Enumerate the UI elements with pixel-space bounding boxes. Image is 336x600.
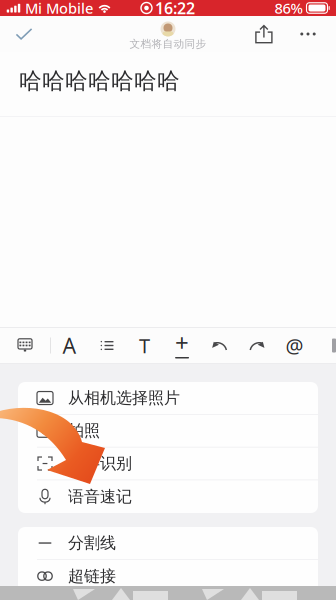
staticText: Mi Mobile bbox=[25, 0, 93, 18]
button[interactable]: 超链接 bbox=[18, 560, 318, 593]
button[interactable]: Redo bbox=[238, 327, 276, 364]
staticText: + bbox=[175, 327, 189, 358]
button[interactable]: Keyboard bbox=[0, 327, 50, 364]
staticText: 拍照 bbox=[68, 421, 100, 441]
button[interactable]: Font bbox=[51, 327, 88, 364]
staticText: A bbox=[62, 331, 76, 360]
staticText: 文档将自动同步 bbox=[129, 37, 206, 50]
staticText: 超链接 bbox=[68, 566, 116, 586]
button[interactable]: More bbox=[286, 14, 330, 54]
staticText: 文字识别 bbox=[68, 454, 132, 473]
button[interactable]: 分割线 bbox=[18, 527, 318, 560]
button[interactable]: 拍照 bbox=[18, 415, 318, 448]
button[interactable]: 语音速记 bbox=[18, 480, 318, 513]
button[interactable]: Text style bbox=[126, 327, 163, 364]
button[interactable]: Undo bbox=[201, 327, 238, 364]
button[interactable]: Share bbox=[242, 14, 286, 54]
staticText: 哈哈哈哈哈哈哈 bbox=[19, 67, 180, 95]
staticText: 从相机选择照片 bbox=[68, 388, 180, 408]
button[interactable]: Insert bbox=[163, 327, 201, 364]
button[interactable]: 文字识别 bbox=[18, 447, 318, 480]
staticText: 16:22 bbox=[155, 0, 195, 19]
staticText: T bbox=[139, 332, 150, 359]
staticText: 86% bbox=[274, 0, 302, 18]
button[interactable]: List bbox=[88, 327, 126, 364]
button[interactable]: 从相机选择照片 bbox=[18, 382, 318, 415]
button[interactable]: Mention bbox=[276, 327, 313, 364]
staticText: 语音速记 bbox=[68, 487, 132, 506]
staticText: 分割线 bbox=[68, 533, 116, 553]
button[interactable]: Done bbox=[4, 14, 44, 54]
staticText: @ bbox=[286, 332, 304, 359]
